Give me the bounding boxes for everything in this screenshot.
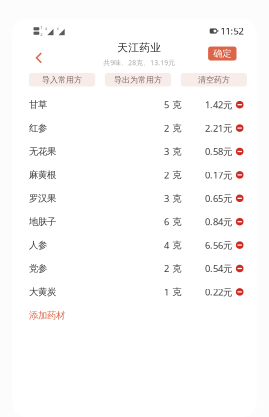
staticText: 6.56元 xyxy=(205,239,232,251)
staticText: 4 xyxy=(164,239,169,251)
staticText: 麻黄根 xyxy=(29,169,56,181)
staticText: 1.42元 xyxy=(205,98,232,111)
button[interactable]: 甘草 xyxy=(29,93,243,116)
staticText: 清空药方 xyxy=(198,75,230,85)
staticText: 1 xyxy=(40,25,42,30)
staticText: 克 xyxy=(172,216,181,227)
staticText: 0.22元 xyxy=(205,286,232,298)
button[interactable]: 添加药材 xyxy=(29,304,243,327)
staticText: 克 xyxy=(172,239,181,251)
staticText: 共9味、28克、13.19元 xyxy=(103,58,175,67)
staticText: 5 xyxy=(164,98,169,111)
button[interactable]: 麻黄根 xyxy=(29,163,243,187)
staticText: ıl xyxy=(45,26,47,31)
staticText: 11:52 xyxy=(220,25,243,37)
button[interactable]: 党参 xyxy=(29,257,243,280)
button[interactable]: 红参 xyxy=(29,116,243,140)
staticText: 导入常用方 xyxy=(42,75,82,85)
staticText: 罗汉果 xyxy=(29,193,56,204)
staticText: 克 xyxy=(172,193,181,204)
button[interactable]: 返回 xyxy=(29,45,49,71)
staticText: 2 xyxy=(164,169,169,181)
staticText: 2.21元 xyxy=(205,122,232,134)
staticText: 克 xyxy=(172,146,181,157)
staticText: 0.84元 xyxy=(205,215,232,228)
button[interactable]: 人参 xyxy=(29,233,243,257)
staticText: 0.58元 xyxy=(205,145,232,158)
staticText: 地肤子 xyxy=(29,216,56,227)
staticText: 0.54元 xyxy=(205,262,232,275)
staticText: 克 xyxy=(172,122,181,134)
button[interactable]: 无花果 xyxy=(29,140,243,163)
staticText: 3 xyxy=(164,192,169,204)
staticText: 甘草 xyxy=(29,99,47,110)
staticText: 3 xyxy=(164,145,169,158)
button[interactable]: 导入常用方 xyxy=(29,73,95,86)
staticText: 大黄炭 xyxy=(29,286,56,298)
button[interactable]: 导出为常用方 xyxy=(105,73,171,86)
button[interactable]: 大黄炭 xyxy=(29,280,243,304)
staticText: 克 xyxy=(172,99,181,110)
staticText: 党参 xyxy=(29,263,47,274)
staticText: 0.17元 xyxy=(205,169,232,181)
staticText: 人参 xyxy=(29,239,47,251)
staticText: 1 xyxy=(164,286,169,298)
staticText: 天江药业 xyxy=(117,41,161,54)
staticText: 克 xyxy=(172,263,181,274)
staticText: 导出为常用方 xyxy=(114,75,162,85)
staticText: 克 xyxy=(172,286,181,298)
staticText: 6 xyxy=(164,215,169,228)
staticText: 红参 xyxy=(29,122,47,134)
staticText: 无花果 xyxy=(29,146,56,157)
staticText: 0.65元 xyxy=(205,192,232,204)
button[interactable]: 确定 xyxy=(208,46,236,60)
button[interactable]: 罗汉果 xyxy=(29,187,243,210)
staticText: 2 xyxy=(40,32,42,37)
staticText: 添加药材 xyxy=(29,310,65,321)
staticText: 确定 xyxy=(213,48,231,59)
staticText: 克 xyxy=(172,169,181,181)
staticText: 2 xyxy=(164,122,169,134)
staticText: ıl xyxy=(56,26,58,31)
button[interactable]: 地肤子 xyxy=(29,210,243,233)
button[interactable]: 清空药方 xyxy=(181,73,247,86)
staticText: 2 xyxy=(164,262,169,275)
